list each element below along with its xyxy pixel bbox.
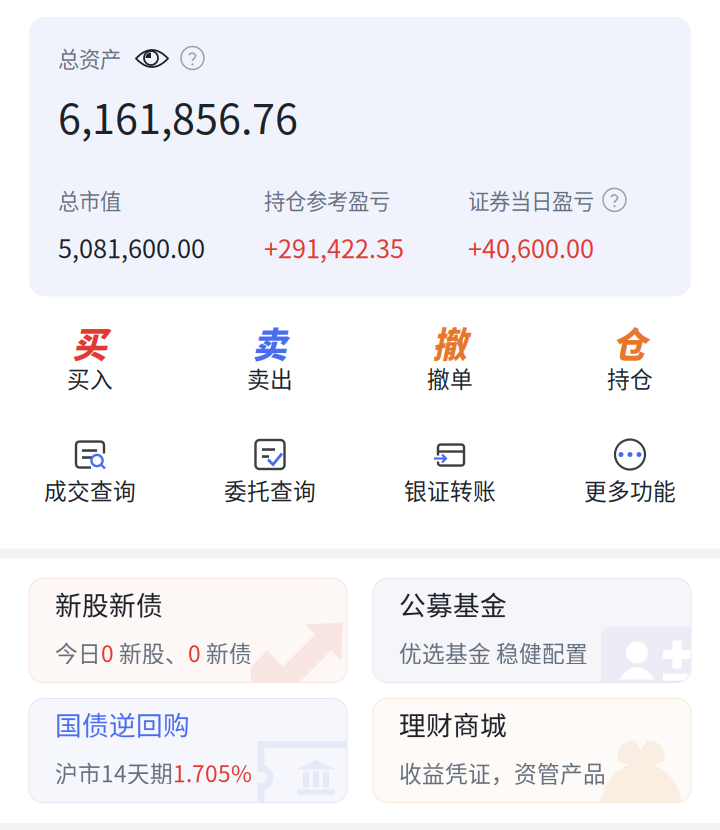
staticText: 仓 bbox=[612, 317, 647, 368]
button[interactable]: 理财商城 bbox=[373, 698, 691, 802]
staticText: 委托查询 bbox=[224, 473, 316, 506]
staticText: 证券当日盈亏 bbox=[468, 184, 594, 215]
staticText: 卖出 bbox=[247, 361, 293, 394]
staticText: 卖 bbox=[252, 317, 287, 368]
staticText: 6,161,856.76 bbox=[58, 86, 298, 146]
staticText: 买入 bbox=[67, 361, 113, 394]
staticText: 国债逆回购 bbox=[55, 704, 190, 743]
button[interactable]: 国债逆回购 bbox=[29, 698, 347, 802]
staticText: 新股新债 bbox=[55, 584, 163, 623]
staticText: 收益凭证，资管产品 bbox=[399, 756, 606, 789]
staticText: 总市值 bbox=[58, 184, 121, 215]
button[interactable]: 更多功能 bbox=[540, 408, 720, 548]
staticText: 新股、 bbox=[114, 636, 188, 669]
staticText: 5,081,600.00 bbox=[58, 229, 205, 266]
button[interactable]: 委托查询 bbox=[180, 408, 360, 548]
staticText: +291,422.35 bbox=[264, 229, 404, 266]
button[interactable]: 公募基金 bbox=[373, 578, 691, 682]
staticText: 理财商城 bbox=[399, 704, 507, 743]
staticText: 今日 bbox=[55, 636, 101, 669]
staticText: 更多功能 bbox=[584, 473, 676, 506]
staticText: 银证转账 bbox=[404, 473, 496, 506]
staticText: 沪市14天期 bbox=[55, 756, 173, 789]
staticText: 0 bbox=[101, 636, 114, 669]
button[interactable]: 撤 bbox=[360, 296, 540, 408]
staticText: 总资产 bbox=[58, 43, 121, 73]
button[interactable]: 仓 bbox=[540, 296, 720, 408]
button[interactable]: 新股新债 bbox=[29, 578, 347, 682]
button[interactable]: 卖 bbox=[180, 296, 360, 408]
staticText: 撤单 bbox=[427, 361, 473, 394]
staticText: 持仓参考盈亏 bbox=[264, 184, 390, 215]
staticText: 持仓 bbox=[607, 361, 653, 394]
staticText: 1.705% bbox=[173, 756, 252, 789]
staticText: 成交查询 bbox=[44, 473, 136, 506]
button[interactable]: 成交查询 bbox=[0, 408, 180, 548]
staticText: 优选基金 稳健配置 bbox=[399, 636, 588, 669]
staticText: 公募基金 bbox=[399, 584, 507, 623]
staticText: 新债 bbox=[201, 636, 252, 669]
staticText: 买 bbox=[72, 317, 107, 368]
staticText: +40,600.00 bbox=[468, 229, 594, 266]
staticText: 撤 bbox=[432, 317, 467, 368]
button[interactable]: 买 bbox=[0, 296, 180, 408]
button[interactable]: 银证转账 bbox=[360, 408, 540, 548]
staticText: 0 bbox=[188, 636, 201, 669]
